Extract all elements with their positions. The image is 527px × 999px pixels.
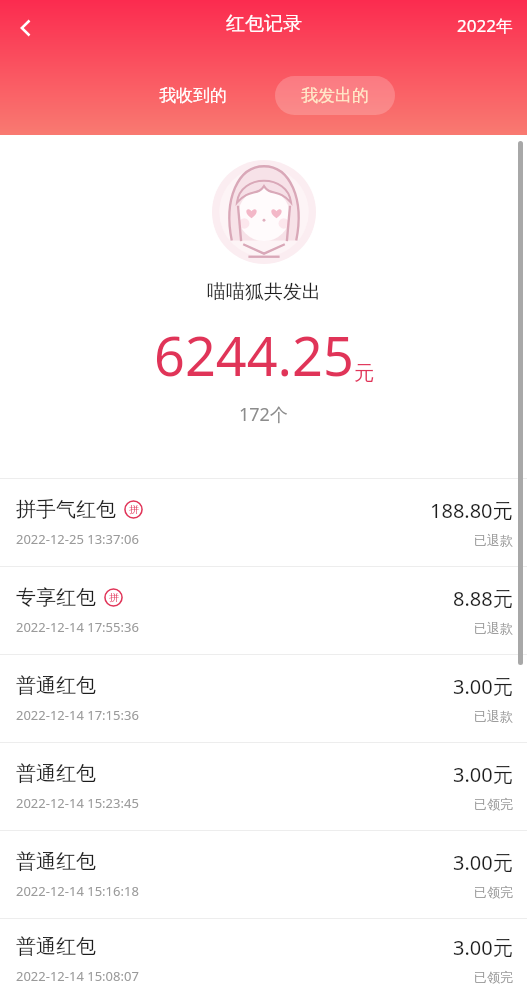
staticText: 拼 [129,503,139,516]
staticText: 2022-12-14 15:16:18 [16,882,139,900]
button[interactable]: 普通红包 [0,919,527,999]
button[interactable]: 普通红包 [0,743,527,830]
staticText: 普通红包 [16,849,96,874]
staticText: 已退款 [474,532,513,548]
staticText: 已领完 [474,884,513,900]
staticText: 2022-12-25 13:37:06 [16,530,139,548]
staticText: 我收到的 [159,85,227,106]
staticText: 3.00元 [453,934,513,961]
staticText: 2022年 [457,14,513,37]
button[interactable]: 我发出的 [275,76,395,115]
staticText: 172个 [239,402,288,427]
staticText: 已退款 [474,708,513,724]
button[interactable]: Back [4,6,48,50]
staticText: 已领完 [474,796,513,812]
staticText: 188.80元 [430,497,513,524]
button[interactable]: 我收到的 [133,76,253,115]
staticText: 普通红包 [16,934,96,959]
staticText: 已退款 [474,620,513,636]
staticText: 拼手气红包 [16,497,116,522]
staticText: 6244.25 [154,318,354,392]
staticText: 已领完 [474,969,513,985]
button[interactable]: 专享红包 [0,567,527,654]
button[interactable]: 拼手气红包 [0,479,527,566]
staticText: 我发出的 [301,85,369,106]
staticText: 3.00元 [453,761,513,788]
staticText: 8.88元 [453,585,513,612]
staticText: 红包记录 [226,12,302,36]
staticText: 2022-12-14 17:15:36 [16,706,139,724]
staticText: 普通红包 [16,673,96,698]
staticText: 元 [354,361,374,386]
button[interactable]: 普通红包 [0,831,527,918]
staticText: 2022-12-14 15:08:07 [16,967,139,985]
staticText: 2022-12-14 15:23:45 [16,794,139,812]
button[interactable]: 2022年 [443,2,527,49]
staticText: 3.00元 [453,673,513,700]
staticText: 拼 [109,591,119,604]
staticText: 3.00元 [453,849,513,876]
staticText: 2022-12-14 17:55:36 [16,618,139,636]
button[interactable]: 普通红包 [0,655,527,742]
staticText: 普通红包 [16,761,96,786]
staticText: 专享红包 [16,585,96,610]
staticText: 喵喵狐共发出 [207,280,321,304]
